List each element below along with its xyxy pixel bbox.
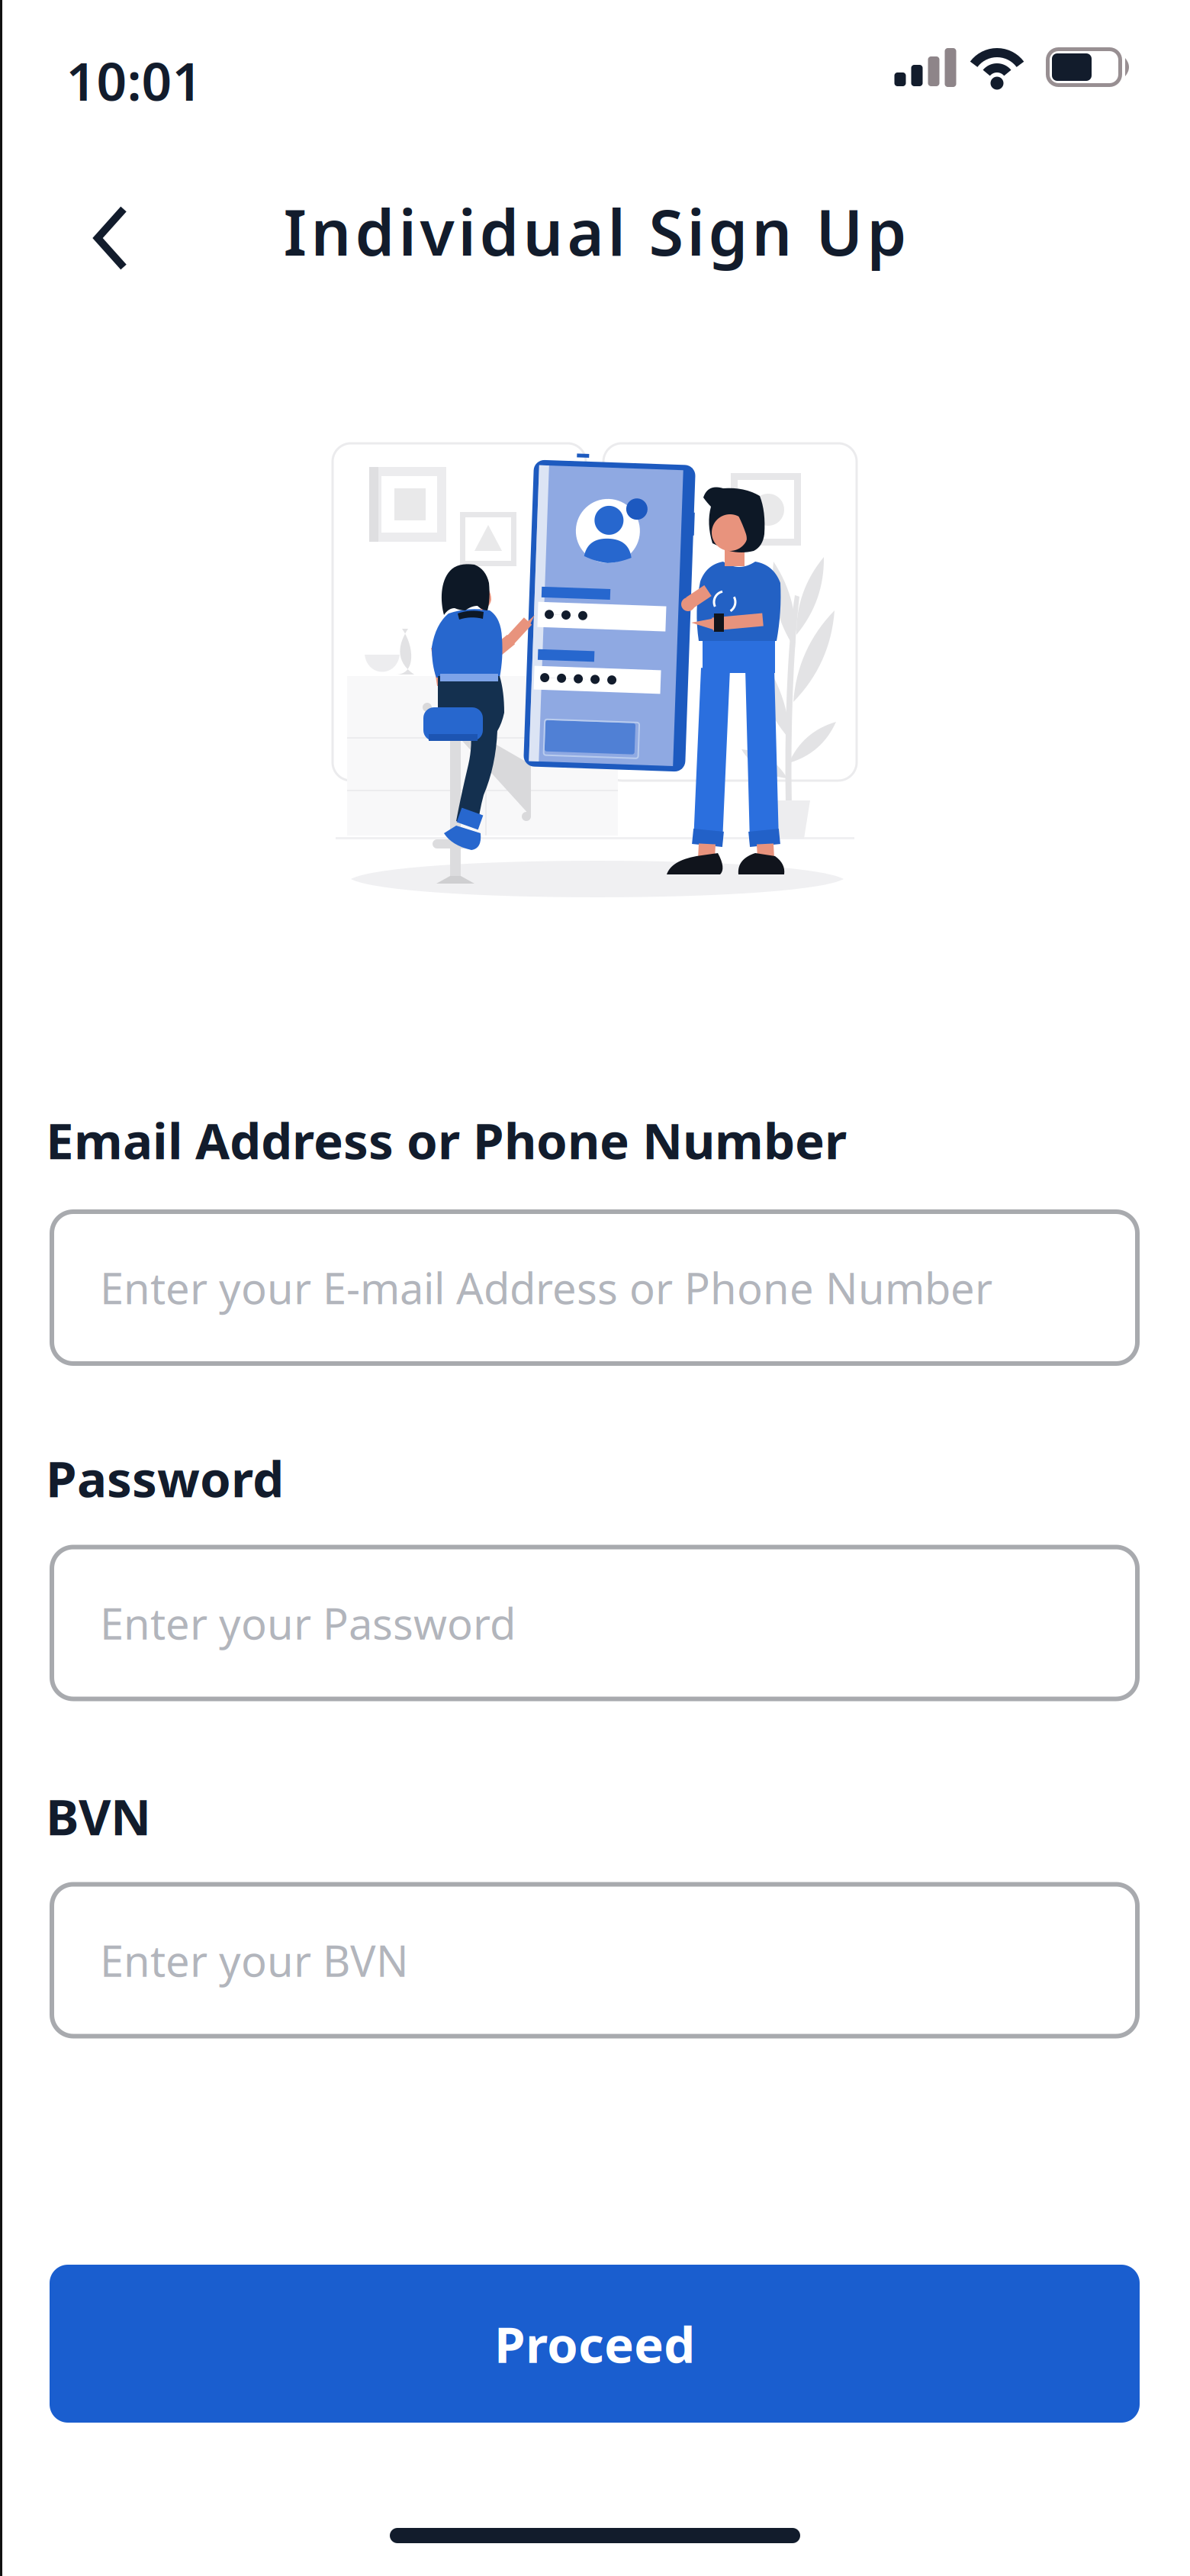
- button[interactable]: Back: [65, 192, 156, 284]
- button[interactable]: Enter your BVN: [50, 1882, 1140, 2038]
- staticText: Individual Sign Up: [283, 189, 907, 273]
- staticText: Password: [46, 1445, 284, 1511]
- staticText: Enter your E-mail Address or Phone Numbe…: [100, 1259, 992, 1316]
- staticText: BVN: [46, 1783, 151, 1849]
- button[interactable]: Enter your Password: [50, 1545, 1140, 1701]
- staticText: Email Address or Phone Number: [46, 1107, 847, 1173]
- staticText: Enter your BVN: [100, 1932, 409, 1989]
- staticText: 10:01: [66, 45, 203, 115]
- staticText: Enter your Password: [100, 1595, 516, 1651]
- staticText: Proceed: [494, 2311, 695, 2377]
- button[interactable]: Enter your E-mail Address or Phone Numbe…: [50, 1209, 1140, 1366]
- button[interactable]: Proceed: [50, 2265, 1140, 2423]
